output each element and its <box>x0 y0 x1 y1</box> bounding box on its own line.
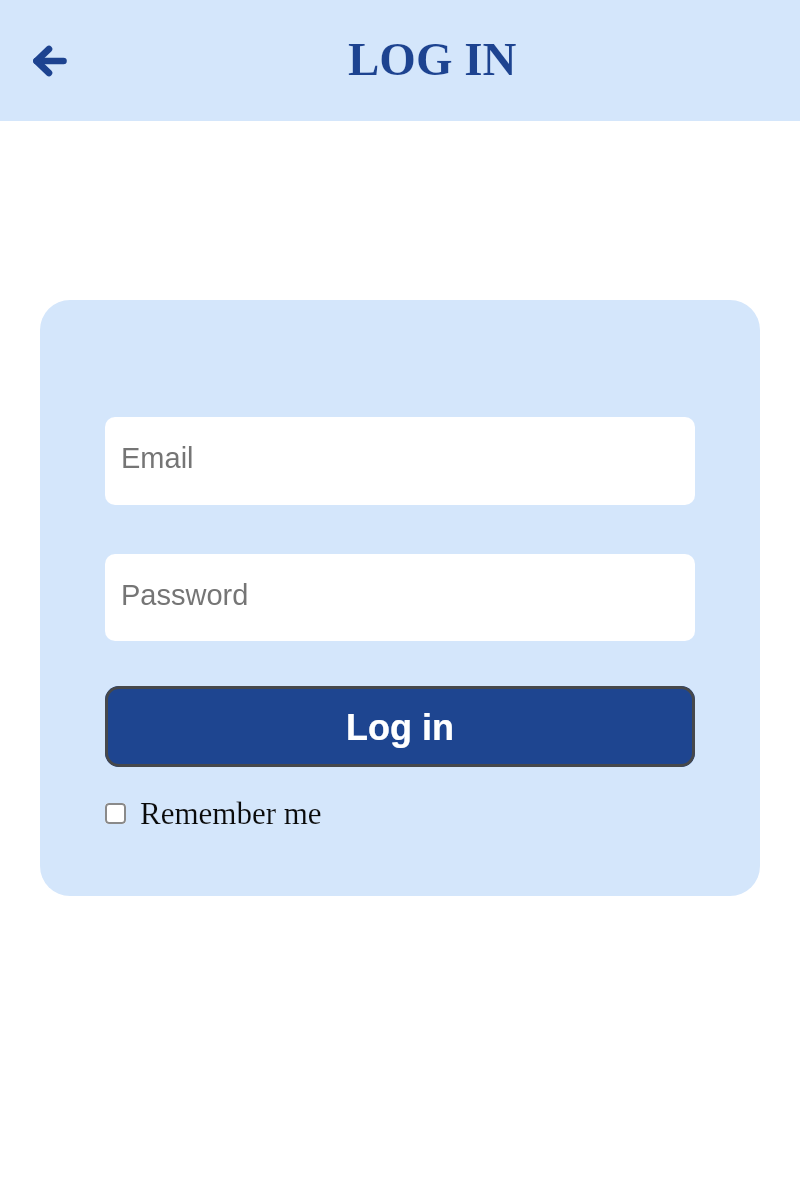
staticText: LOG IN <box>348 33 517 85</box>
staticText: Email <box>121 442 194 474</box>
button[interactable]: Remember me <box>105 796 322 830</box>
staticText: Password <box>121 579 249 611</box>
button[interactable]: Password <box>105 554 695 641</box>
button[interactable]: Log in <box>105 686 695 767</box>
button[interactable] <box>22 33 78 89</box>
staticText: Remember me <box>140 796 322 830</box>
button[interactable]: Email <box>105 417 695 505</box>
staticText: Log in <box>346 707 454 747</box>
